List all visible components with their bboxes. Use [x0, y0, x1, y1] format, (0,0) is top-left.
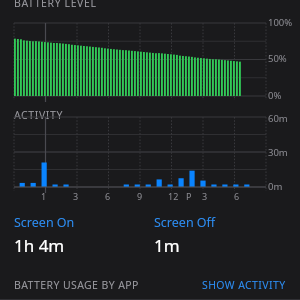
staticText: 0% — [268, 89, 282, 102]
staticText: 12 — [168, 190, 179, 202]
button[interactable]: BATTERY USAGE BY APP — [14, 278, 202, 292]
staticText: 1h 4m — [14, 234, 65, 257]
staticText: 0m — [268, 180, 283, 193]
staticText: 1m — [154, 234, 180, 257]
staticText: Screen On — [14, 214, 75, 231]
staticText: 3 — [202, 190, 208, 202]
staticText: 100% — [268, 16, 293, 29]
staticText: ACTIVITY — [14, 108, 63, 122]
staticText: 3 — [73, 190, 79, 202]
button[interactable]: Screen On — [14, 214, 154, 257]
button[interactable]: Screen Off — [154, 214, 286, 257]
staticText: SHOW ACTIVITY — [202, 278, 286, 292]
staticText: 60m — [268, 112, 288, 125]
staticText: 9 — [137, 190, 143, 202]
staticText: 6 — [105, 190, 111, 202]
staticText: 30m — [268, 146, 288, 159]
button[interactable]: SHOW ACTIVITY — [202, 278, 286, 292]
staticText: BATTERY LEVEL — [14, 0, 97, 10]
staticText: 50% — [268, 52, 287, 65]
staticText: P — [186, 190, 192, 202]
staticText: BATTERY USAGE BY APP — [14, 278, 139, 292]
staticText: 6 — [234, 190, 240, 202]
staticText: Screen Off — [154, 214, 216, 231]
staticText: 1 — [41, 190, 47, 202]
